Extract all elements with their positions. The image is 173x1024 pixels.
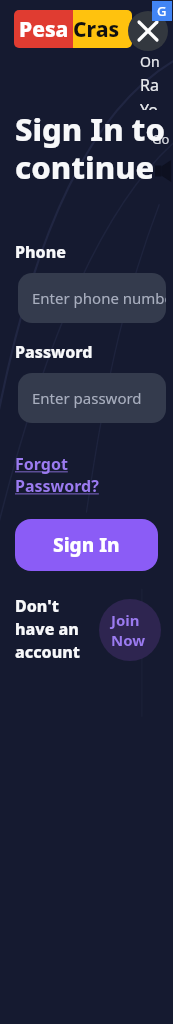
staticText: Enter phone number — [32, 288, 166, 308]
staticText: Join Now — [111, 610, 149, 650]
button[interactable]: Enter password — [18, 373, 166, 423]
staticText: Crash — [73, 15, 132, 44]
button[interactable]: Enter phone number — [18, 273, 166, 323]
staticText: Yo — [140, 99, 158, 110]
staticText: G — [157, 2, 167, 20]
button[interactable]: Google — [152, 1, 172, 21]
staticText: Don't have an account — [15, 595, 101, 663]
button[interactable]: Close — [128, 11, 168, 51]
staticText: Sign In — [53, 532, 120, 558]
staticText: Ra — [140, 74, 159, 96]
staticText: Password — [15, 341, 93, 363]
staticText: Forgot Password? — [15, 453, 120, 497]
button[interactable]: Sign In — [15, 519, 158, 571]
staticText: Sign In to continue — [15, 108, 173, 188]
staticText: Enter password — [32, 388, 142, 408]
staticText: Pesa — [19, 15, 69, 44]
button[interactable]: Pesa — [14, 10, 132, 48]
staticText: On — [140, 52, 160, 71]
staticText: Go — [152, 130, 170, 148]
button[interactable]: Forgot Password? — [15, 453, 120, 497]
button[interactable]: Join Now — [99, 599, 161, 661]
staticText: Phone — [15, 241, 66, 263]
